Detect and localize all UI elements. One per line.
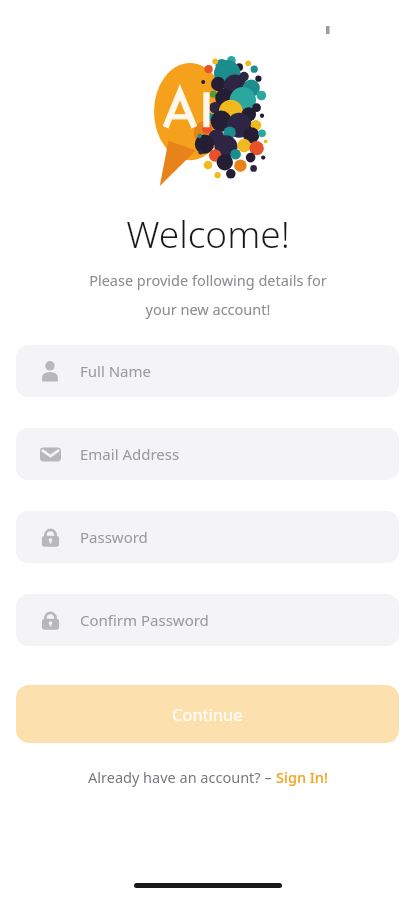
staticText: Continue <box>172 703 243 725</box>
staticText: Already have an account? – <box>88 767 276 787</box>
staticText: Welcome! <box>126 208 290 258</box>
staticText: Sign In! <box>276 767 328 787</box>
staticText: Password <box>80 527 148 547</box>
staticText: Full Name <box>80 361 151 381</box>
staticText: Confirm Password <box>80 610 209 630</box>
button[interactable]: Full Name <box>16 345 399 397</box>
button[interactable]: Confirm Password <box>16 594 399 646</box>
staticText: Please provide following details for you… <box>89 270 327 319</box>
staticText: Email Address <box>80 444 180 464</box>
button[interactable]: Email Address <box>16 428 399 480</box>
button[interactable]: Continue <box>16 685 399 743</box>
button[interactable]: Password <box>16 511 399 563</box>
button[interactable]: Already have an account? – <box>80 763 336 791</box>
